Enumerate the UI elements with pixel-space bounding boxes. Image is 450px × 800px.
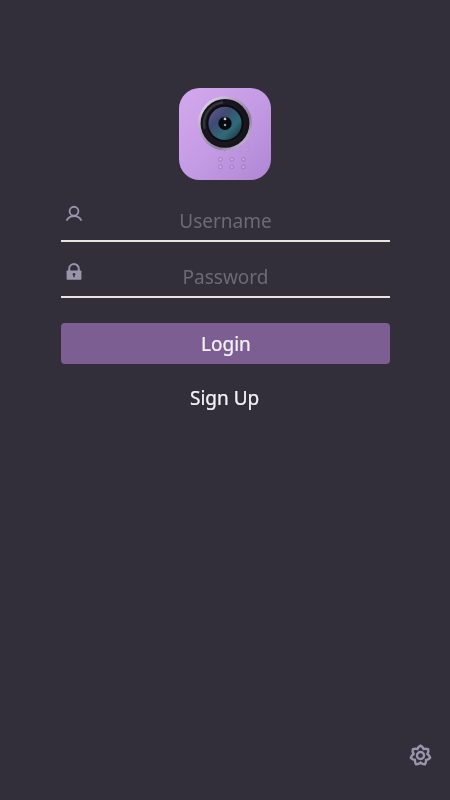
staticText: Password <box>61 264 390 290</box>
button[interactable]: Password <box>61 258 390 298</box>
staticText: Sign Up <box>190 385 260 411</box>
button[interactable]: Sign Up <box>172 376 278 420</box>
button[interactable]: Username <box>61 202 390 242</box>
button[interactable]: Login <box>61 323 390 364</box>
button[interactable] <box>179 88 271 180</box>
staticText: Login <box>201 331 251 357</box>
staticText: Username <box>61 208 390 234</box>
button[interactable]: Settings <box>406 741 434 769</box>
